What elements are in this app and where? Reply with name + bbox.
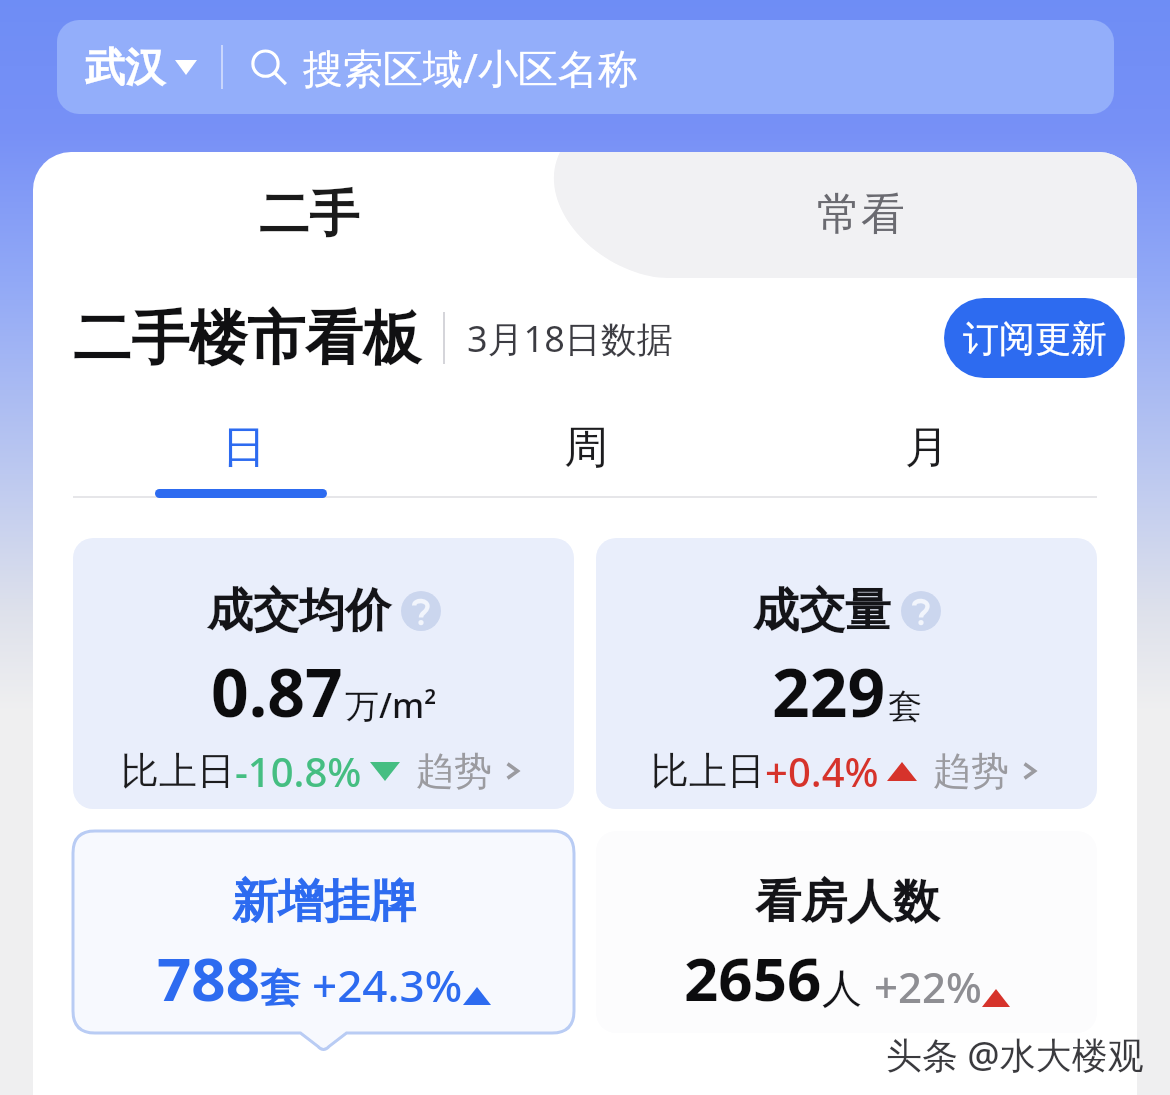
button[interactable]: 订阅更新 [944, 298, 1125, 378]
staticText: 2656 [684, 937, 822, 1019]
staticText: 趋势 [416, 747, 492, 795]
staticText: 比上日 [651, 747, 765, 795]
staticText: 周 [564, 420, 608, 475]
staticText: 武汉 [85, 42, 165, 92]
staticText: 二手楼市看板 [73, 302, 421, 375]
staticText: -10.8% [235, 744, 362, 798]
button[interactable] [73, 831, 574, 1051]
staticText: 订阅更新 [963, 316, 1107, 361]
staticText: +0.4% [765, 744, 879, 798]
staticText: 229 [772, 646, 886, 736]
other: Search [247, 46, 289, 88]
staticText: 人 [822, 963, 862, 1013]
staticText: 看房人数 [755, 873, 939, 931]
staticText: +22% [874, 958, 982, 1015]
staticText: +24.3% [312, 955, 463, 1015]
staticText: 比上日 [121, 747, 235, 795]
button[interactable]: 看房人数 [596, 831, 1097, 1033]
staticText: 成交量 [753, 582, 891, 640]
button[interactable]: 趋势 [416, 747, 526, 795]
staticText: 3月18日数据 [467, 314, 673, 363]
staticText: 套 [888, 685, 922, 728]
staticText: 日 [222, 420, 266, 475]
staticText: 搜索区域/小区名称 [303, 40, 638, 95]
button[interactable]: 成交均价 [73, 538, 574, 809]
staticText: 月 [905, 420, 949, 475]
staticText: 趋势 [933, 747, 1009, 795]
button[interactable]: 武汉 [57, 20, 1114, 114]
staticText: 成交均价 [207, 582, 391, 640]
staticText: 头条 @水大楼观 [886, 1030, 1144, 1079]
staticText: 常看 [817, 187, 905, 242]
staticText: 新增挂牌 [232, 873, 416, 931]
button[interactable]: 周 [415, 396, 756, 498]
button[interactable]: 趋势 [933, 747, 1043, 795]
staticText: 套 [260, 963, 300, 1013]
staticText: 0.87 [211, 646, 343, 736]
button[interactable]: 月 [756, 396, 1097, 498]
button[interactable]: 常看 [585, 152, 1137, 276]
staticText: 万/m² [345, 682, 437, 728]
staticText: 二手 [259, 183, 359, 246]
button[interactable]: 二手 [33, 152, 585, 276]
button[interactable]: 日 [73, 396, 415, 498]
button[interactable]: 成交量 [596, 538, 1097, 809]
staticText: 788 [157, 937, 260, 1019]
